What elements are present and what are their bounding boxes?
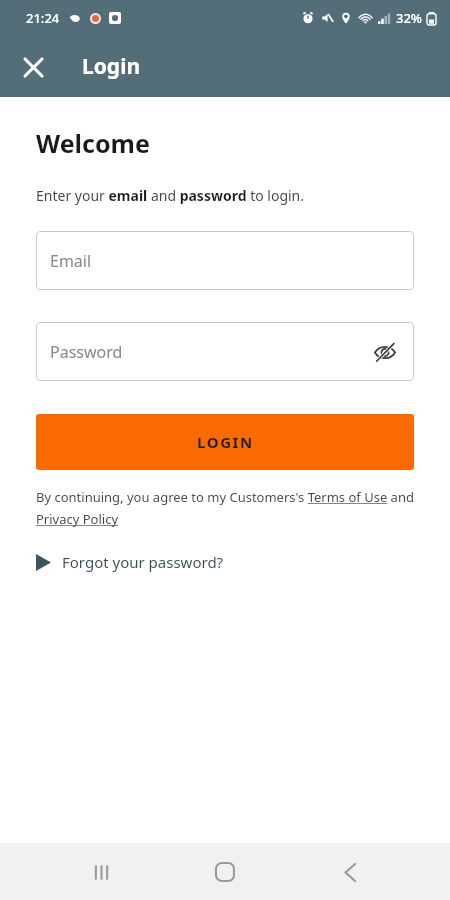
staticText: Enter your email and password to login.	[36, 186, 305, 205]
staticText: Forgot your password?	[62, 552, 224, 572]
button[interactable]: Forgot your password?	[36, 552, 224, 572]
button[interactable]: LOGIN	[36, 414, 414, 470]
button[interactable]: Show password	[368, 335, 402, 369]
staticText: 21:24	[26, 9, 60, 27]
button[interactable]: Email	[36, 231, 414, 290]
staticText: Login	[82, 52, 141, 81]
staticText: LOGIN	[197, 432, 254, 452]
button[interactable]: Home	[201, 848, 249, 896]
button[interactable]: Password	[36, 322, 414, 381]
staticText: Password	[50, 341, 123, 363]
button[interactable]: Close	[13, 47, 53, 87]
staticText: Welcome	[36, 126, 150, 160]
button[interactable]: Back	[326, 848, 374, 896]
button[interactable]: Recent apps	[77, 848, 125, 896]
staticText: Email	[50, 250, 92, 272]
staticText: 32%	[396, 9, 422, 27]
staticText: By continuing, you agree to my Customers…	[36, 488, 414, 528]
